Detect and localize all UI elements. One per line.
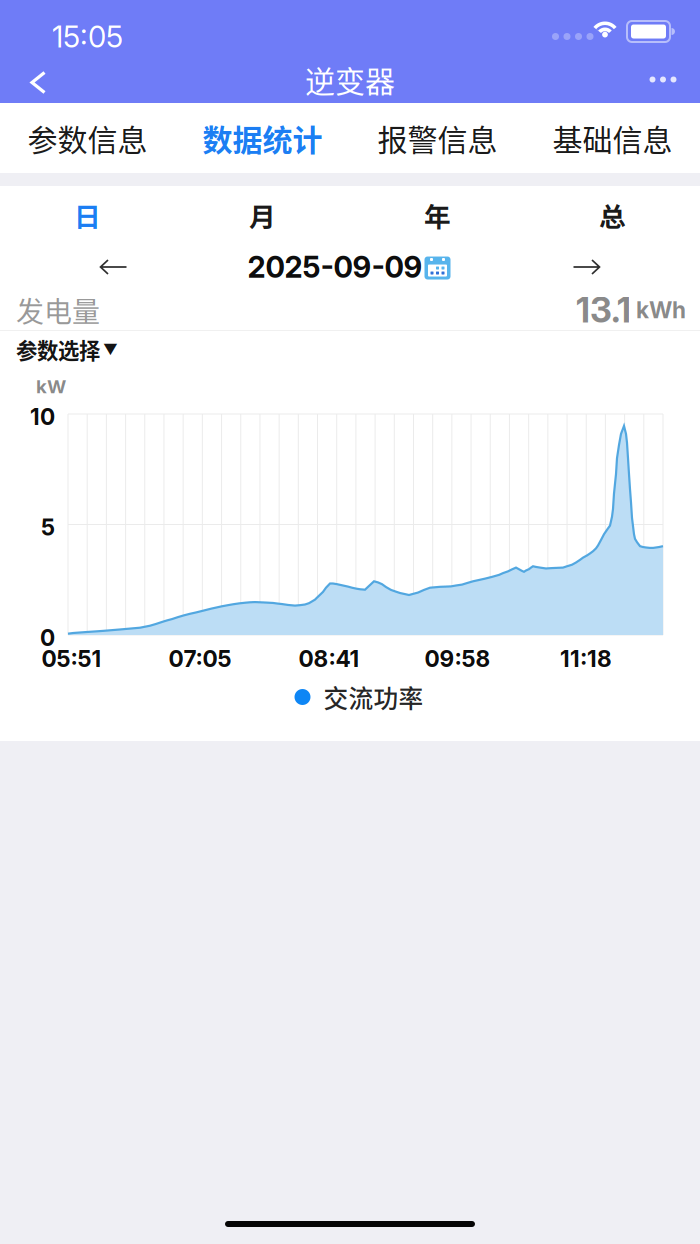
staticText: 年 [424, 196, 451, 234]
staticText: 08:41 [298, 645, 359, 672]
button[interactable]: 参数选择 [0, 331, 118, 368]
staticText: 参数信息 [27, 116, 147, 160]
staticText: kW [36, 375, 66, 398]
staticText: 05:51 [41, 645, 101, 672]
staticText: 13.1 [576, 289, 631, 331]
staticText: 5 [41, 513, 55, 541]
staticText: 数据统计 [202, 116, 322, 160]
button[interactable]: 年 [350, 186, 525, 244]
button[interactable]: Next day [531, 244, 641, 290]
button[interactable]: 2025-09-09 [219, 244, 479, 290]
staticText: 10 [30, 403, 55, 430]
button[interactable]: 月 [175, 186, 350, 244]
button[interactable]: More options [631, 56, 695, 103]
button[interactable]: 参数信息 [0, 103, 175, 173]
staticText: 11:18 [560, 645, 612, 672]
button[interactable]: 总 [525, 186, 700, 244]
staticText: 0 [40, 624, 55, 651]
staticText: 09:58 [424, 645, 490, 672]
staticText: 逆变器 [305, 58, 395, 101]
staticText: kWh [631, 296, 686, 324]
button[interactable]: 数据统计 [175, 103, 350, 173]
button[interactable]: Previous day [58, 244, 168, 290]
staticText: 2025-09-09 [247, 249, 422, 285]
staticText: 总 [599, 196, 626, 234]
staticText: 15:05 [52, 19, 123, 54]
button[interactable]: 报警信息 [350, 103, 525, 173]
staticText: 报警信息 [377, 116, 497, 160]
staticText: 交流功率 [323, 679, 423, 715]
staticText: 参数选择 [16, 334, 100, 365]
staticText: 月 [249, 196, 276, 234]
button[interactable]: 基础信息 [525, 103, 700, 173]
staticText: 发电量 [16, 290, 100, 330]
staticText: ▼ [103, 341, 118, 358]
staticText: 07:05 [168, 645, 231, 672]
staticText: 基础信息 [552, 116, 672, 160]
staticText: 日 [74, 196, 101, 234]
button[interactable]: 日 [0, 186, 175, 244]
button[interactable]: Back [7, 59, 69, 106]
